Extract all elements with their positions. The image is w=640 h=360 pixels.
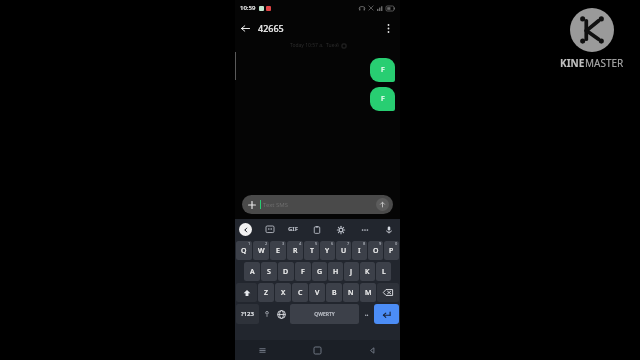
staticText: 0 <box>395 241 398 246</box>
button[interactable]: Recent apps <box>235 340 290 360</box>
staticText: ?123 <box>241 310 254 318</box>
staticText: Q <box>241 246 247 256</box>
button[interactable]: Change language <box>274 304 289 324</box>
button[interactable]: F <box>370 87 395 111</box>
button[interactable]: F <box>370 58 395 82</box>
staticText: F <box>381 65 385 75</box>
button[interactable]: Add attachment <box>242 195 393 214</box>
button[interactable]: C <box>292 283 308 302</box>
staticText: 3 <box>282 241 285 246</box>
button[interactable]: L <box>376 262 391 281</box>
button[interactable]: X <box>275 283 291 302</box>
button[interactable]: P <box>384 241 399 260</box>
button[interactable]: Back <box>235 18 255 38</box>
staticText: L <box>382 267 386 277</box>
staticText: 7 <box>347 241 350 246</box>
button[interactable] <box>360 304 373 324</box>
button[interactable]: Home <box>290 340 345 360</box>
staticText: 6 <box>331 241 334 246</box>
staticText: H <box>333 267 339 277</box>
button[interactable]: U <box>336 241 351 260</box>
button[interactable]: Stickers <box>263 223 276 236</box>
button[interactable]: D <box>278 262 294 281</box>
button[interactable]: Emoji <box>260 304 273 324</box>
staticText: GIF <box>288 225 298 233</box>
staticText: Y <box>325 246 330 256</box>
staticText: 5 <box>315 241 318 246</box>
staticText: 8 <box>363 241 366 246</box>
button[interactable]: J <box>344 262 359 281</box>
staticText: F <box>381 94 385 104</box>
button[interactable]: Voice input <box>382 223 395 236</box>
button[interactable]: Backspace <box>377 283 399 302</box>
staticText: G <box>317 267 323 277</box>
button[interactable]: Q <box>236 241 252 260</box>
staticText: B <box>332 288 337 298</box>
staticText: 10:59 <box>240 4 256 12</box>
staticText: W <box>258 246 265 256</box>
staticText: KINE <box>560 56 585 70</box>
staticText: Text SMS <box>263 201 289 209</box>
staticText: D <box>283 267 289 277</box>
button[interactable]: Shift <box>236 283 257 302</box>
button[interactable]: R <box>287 241 303 260</box>
button[interactable]: Back <box>345 340 400 360</box>
staticText: I <box>358 246 361 256</box>
staticText: Today 10:57 a. Tueॐ <box>290 42 340 49</box>
button[interactable]: Expand toolbar <box>239 223 252 236</box>
button[interactable]: A <box>244 262 260 281</box>
staticText: C <box>298 288 303 298</box>
button[interactable]: I <box>352 241 367 260</box>
staticText: U <box>341 246 347 256</box>
staticText: QWERTY <box>314 311 335 318</box>
button[interactable]: Clipboard <box>310 223 323 236</box>
staticText: 42665 <box>258 22 284 34</box>
staticText: 1 <box>248 241 251 246</box>
staticText: S <box>267 267 271 277</box>
staticText: O <box>373 246 379 256</box>
staticText: J <box>350 267 353 277</box>
button[interactable]: B <box>326 283 342 302</box>
button[interactable]: W <box>253 241 269 260</box>
button[interactable]: N <box>343 283 359 302</box>
staticText: A <box>250 267 255 277</box>
staticText: F <box>301 267 305 277</box>
staticText: X <box>281 288 286 298</box>
button[interactable]: V <box>309 283 325 302</box>
staticText: K <box>365 267 370 277</box>
staticText: Z <box>264 288 269 298</box>
button[interactable]: Enter <box>374 304 399 324</box>
button[interactable]: QWERTY <box>290 304 359 324</box>
button[interactable]: O <box>368 241 383 260</box>
staticText: 4 <box>299 241 302 246</box>
button[interactable]: Send <box>376 198 389 211</box>
button[interactable]: ?123 <box>236 304 259 324</box>
button[interactable]: More options <box>379 19 397 37</box>
staticText: N <box>348 288 354 298</box>
button[interactable]: More <box>358 223 371 236</box>
button[interactable]: Y <box>320 241 335 260</box>
staticText: M <box>365 288 372 298</box>
button[interactable]: F <box>295 262 311 281</box>
button[interactable]: G <box>312 262 327 281</box>
staticText: P <box>389 246 394 256</box>
staticText: T <box>310 246 314 256</box>
button[interactable]: H <box>328 262 343 281</box>
button[interactable]: M <box>360 283 376 302</box>
button[interactable]: K <box>360 262 375 281</box>
button[interactable]: T <box>304 241 319 260</box>
staticText: V <box>315 288 320 298</box>
button[interactable]: Settings <box>334 223 347 236</box>
staticText: 9 <box>379 241 382 246</box>
staticText: E <box>276 246 280 256</box>
button[interactable]: GIF <box>287 224 299 234</box>
button[interactable]: Z <box>258 283 274 302</box>
button[interactable]: S <box>261 262 277 281</box>
staticText: MASTER <box>585 56 624 70</box>
staticText: 2 <box>265 241 268 246</box>
button[interactable]: Add attachment <box>246 199 257 210</box>
staticText: R <box>293 246 298 256</box>
button[interactable]: E <box>270 241 286 260</box>
